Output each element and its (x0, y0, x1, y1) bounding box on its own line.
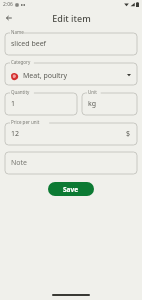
staticText: Name (11, 29, 24, 35)
staticText: Unit (88, 89, 97, 95)
staticText: Edit item (52, 12, 91, 24)
staticText: 2:06 (3, 1, 13, 8)
staticText: Category (11, 59, 31, 65)
button[interactable]: Quantity (5, 89, 77, 115)
button[interactable]: Unit (82, 89, 137, 115)
staticText: sliced beef (11, 39, 47, 49)
staticText: Save (63, 185, 79, 194)
staticText: kg (88, 99, 97, 109)
staticText: 1 (11, 99, 16, 109)
staticText: Meat, poultry (23, 71, 68, 81)
staticText: $ (126, 129, 131, 139)
button[interactable]: Category (5, 59, 137, 85)
staticText: Quantity (11, 89, 30, 95)
button[interactable]: Price per unit (5, 119, 137, 145)
button[interactable]: Note (5, 152, 137, 174)
staticText: Price per unit (11, 119, 40, 125)
staticText: 12 (11, 129, 20, 139)
button[interactable]: Back (2, 11, 16, 25)
button[interactable]: Save (48, 182, 94, 196)
staticText: Note (11, 158, 28, 168)
button[interactable]: Name (5, 29, 137, 55)
